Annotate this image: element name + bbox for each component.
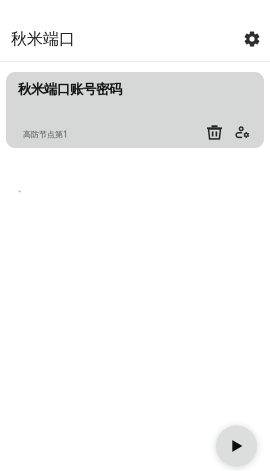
button[interactable]: Settings — [232, 19, 270, 59]
button[interactable]: Play — [216, 425, 257, 466]
button[interactable]: 秋米端口 — [0, 17, 89, 61]
button[interactable]: 秋米端口账号密码 — [6, 72, 264, 148]
button[interactable]: Manage account — [229, 118, 255, 144]
button[interactable]: Delete — [201, 119, 227, 145]
staticText: 秋米端口账号密码 — [18, 81, 122, 97]
staticText: 秋米端口 — [11, 29, 75, 49]
staticText: 高防节点第1 — [23, 129, 68, 140]
